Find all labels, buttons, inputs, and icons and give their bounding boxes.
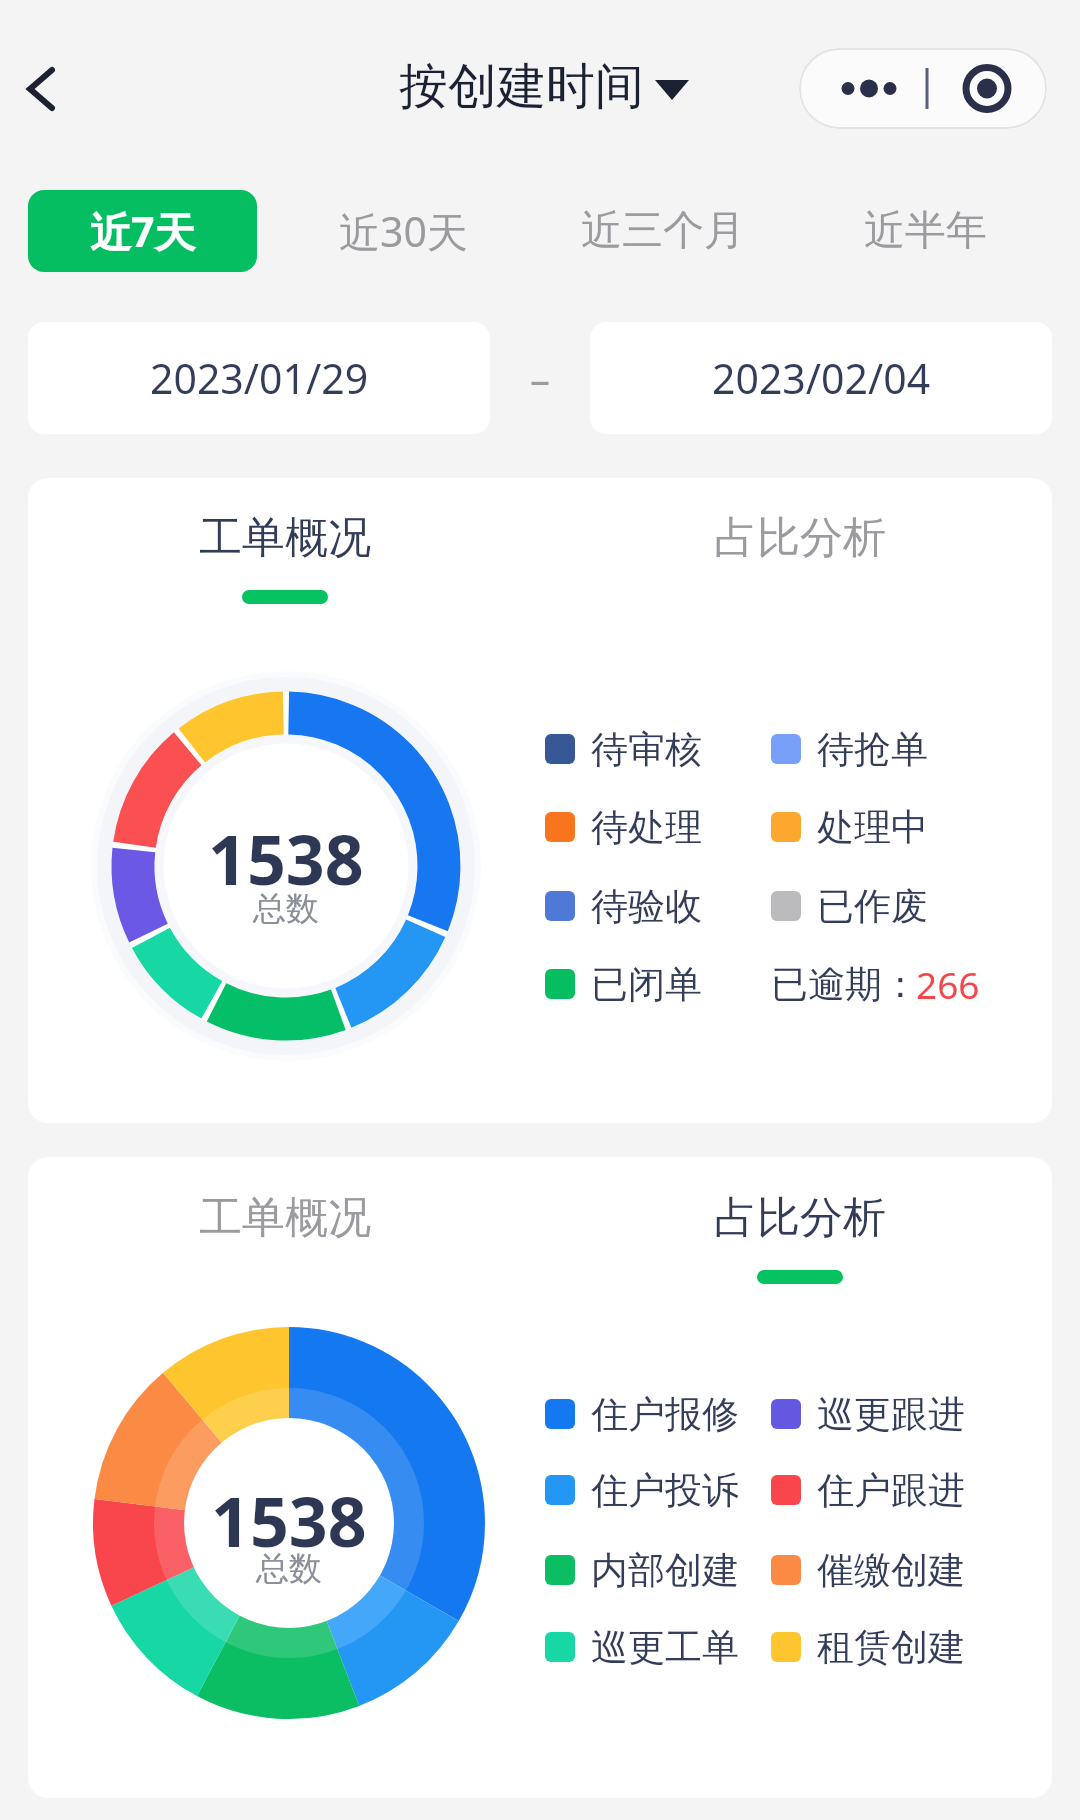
staticText: 已逾期： — [771, 961, 919, 1008]
staticText: 已闭单 — [591, 961, 702, 1008]
staticText: 2023/02/04 — [712, 350, 931, 406]
staticText: 巡更跟进 — [817, 1391, 965, 1438]
staticText: 待抢单 — [817, 726, 928, 773]
staticText: 近30天 — [339, 203, 468, 259]
staticText: 工单概况 — [199, 1191, 371, 1245]
staticText: 近7天 — [90, 203, 196, 259]
button[interactable]: 近三个月 — [560, 190, 766, 272]
button[interactable]: 近30天 — [300, 190, 506, 272]
button[interactable]: 工单概况 — [185, 1188, 385, 1248]
staticText: 1538 — [211, 1474, 367, 1552]
staticText: 处理中 — [817, 804, 928, 851]
staticText: 占比分析 — [714, 511, 886, 565]
staticText: 266 — [916, 959, 980, 1009]
staticText: 总数 — [253, 888, 319, 930]
staticText: 待处理 — [591, 804, 702, 851]
button[interactable]: 近半年 — [822, 190, 1028, 272]
staticText: 工单概况 — [199, 511, 371, 565]
staticText: 催缴创建 — [817, 1547, 965, 1594]
button[interactable] — [12, 58, 72, 118]
button[interactable]: 2023/02/04 — [590, 322, 1052, 434]
button[interactable]: 工单概况 — [185, 508, 385, 568]
staticText: 租赁创建 — [817, 1624, 965, 1671]
staticText: 1538 — [208, 812, 364, 890]
staticText: 总数 — [256, 1548, 322, 1590]
staticText: 按创建时间 — [399, 56, 644, 118]
button[interactable] — [799, 48, 1047, 129]
staticText: 住户报修 — [591, 1391, 739, 1438]
staticText: 待审核 — [591, 726, 702, 773]
staticText: 占比分析 — [714, 1191, 886, 1245]
button[interactable]: 占比分析 — [700, 508, 900, 568]
staticText: 近半年 — [864, 205, 987, 257]
staticText: – — [530, 351, 550, 405]
button[interactable]: 近7天 — [28, 190, 257, 272]
staticText: 2023/01/29 — [150, 350, 369, 406]
button[interactable]: 2023/01/29 — [28, 322, 490, 434]
button[interactable]: 按创建时间 — [392, 56, 694, 118]
button[interactable]: 占比分析 — [700, 1188, 900, 1248]
staticText: 内部创建 — [591, 1547, 739, 1594]
staticText: 住户跟进 — [817, 1467, 965, 1514]
staticText: 近三个月 — [581, 205, 745, 257]
staticText: 住户投诉 — [591, 1467, 739, 1514]
staticText: 已作废 — [817, 883, 928, 930]
staticText: 巡更工单 — [591, 1624, 739, 1671]
staticText: 待验收 — [591, 883, 702, 930]
